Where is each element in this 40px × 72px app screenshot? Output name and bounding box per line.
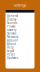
staticText: Settings: [13, 2, 26, 8]
button[interactable]: Updates: [5, 56, 34, 60]
button[interactable]: Network: [5, 35, 34, 39]
staticText: About: [7, 42, 16, 46]
button[interactable]: Privacy: [5, 25, 34, 28]
staticText: General: [7, 14, 18, 18]
staticText: Legal: [7, 49, 14, 53]
button[interactable]: Display: [5, 18, 34, 21]
button[interactable]: Battery: [5, 28, 34, 32]
staticText: Storage: [7, 32, 17, 35]
button[interactable]: Reset: [5, 53, 34, 56]
staticText: Display: [7, 18, 16, 21]
button[interactable]: Legal: [5, 49, 34, 53]
staticText: Privacy: [7, 25, 15, 28]
button[interactable]: Sounds: [5, 21, 34, 25]
button[interactable]: General: [5, 14, 34, 18]
staticText: Updates: [7, 56, 18, 60]
staticText: Help: [7, 46, 14, 49]
staticText: Reset: [7, 53, 15, 56]
button[interactable]: Account: [5, 39, 34, 42]
button[interactable]: Storage: [5, 32, 34, 35]
staticText: Account: [7, 39, 18, 42]
staticText: Battery: [7, 28, 16, 32]
staticText: Network: [7, 35, 18, 39]
staticText: Sounds: [7, 21, 17, 25]
button[interactable]: About: [5, 42, 34, 46]
button[interactable]: Help: [5, 46, 34, 49]
